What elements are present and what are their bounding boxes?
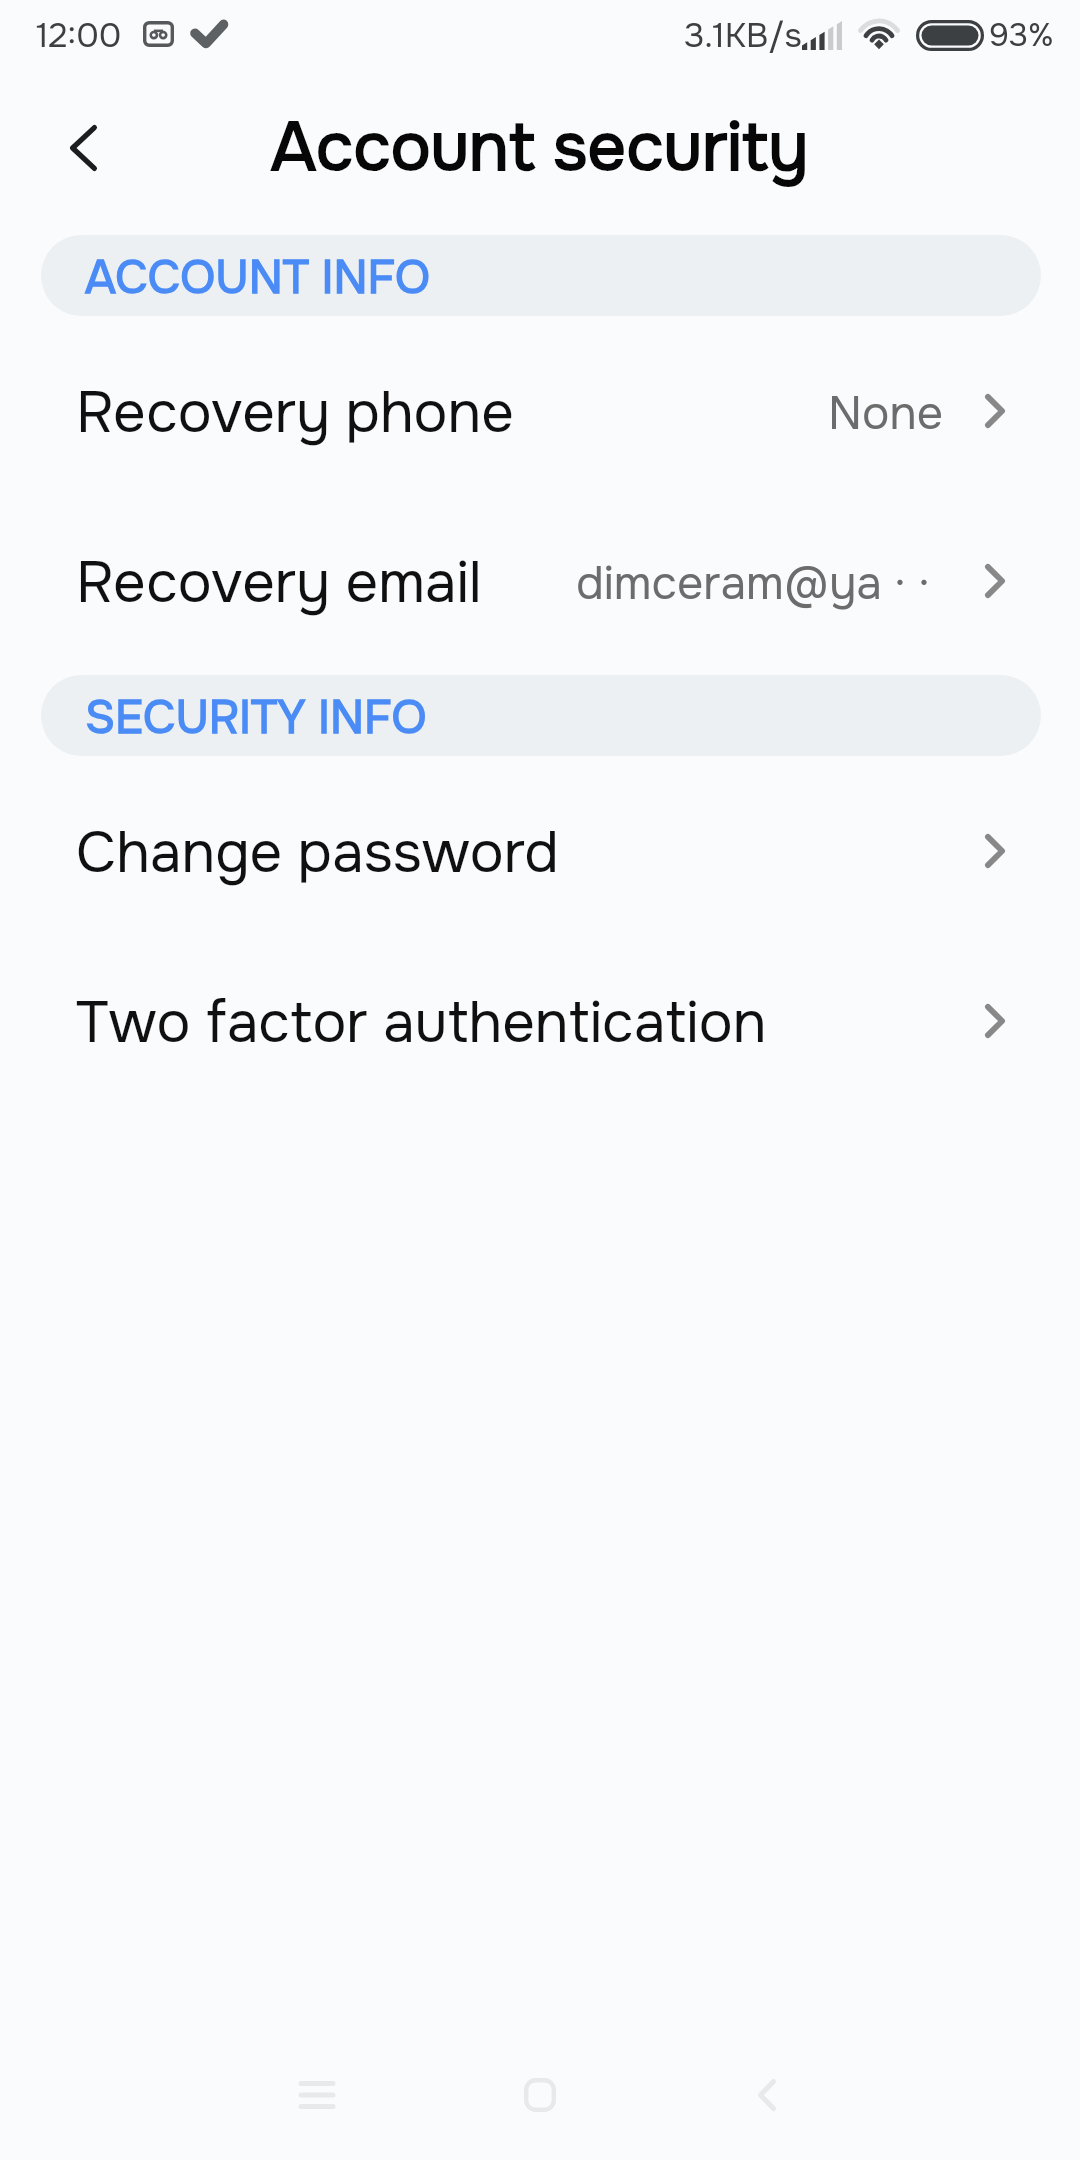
- staticText: Recovery email: [76, 547, 482, 620]
- staticText: ACCOUNT INFO: [85, 248, 431, 307]
- button[interactable]: Home: [465, 2045, 615, 2145]
- button[interactable]: Back: [44, 109, 122, 187]
- button[interactable]: SECURITY INFO: [41, 675, 1041, 756]
- button[interactable]: Recovery email: [0, 498, 1080, 668]
- button[interactable]: Recents: [242, 2045, 392, 2145]
- staticText: Two factor authentication: [76, 987, 767, 1060]
- staticText: SECURITY INFO: [85, 688, 427, 747]
- staticText: dimceram@ya · ·: [576, 554, 943, 613]
- button[interactable]: Change password: [0, 768, 1080, 938]
- staticText: 12:00: [36, 14, 122, 57]
- button[interactable]: Recovery phone: [0, 328, 1080, 498]
- staticText: Recovery phone: [76, 377, 514, 450]
- button[interactable]: Two factor authentication: [0, 938, 1080, 1108]
- staticText: Account security: [271, 105, 809, 190]
- staticText: 93%: [989, 15, 1054, 56]
- button[interactable]: ACCOUNT INFO: [41, 235, 1041, 316]
- staticText: None: [828, 384, 943, 443]
- staticText: 3.1KB/s: [684, 14, 802, 57]
- staticText: Change password: [76, 817, 559, 890]
